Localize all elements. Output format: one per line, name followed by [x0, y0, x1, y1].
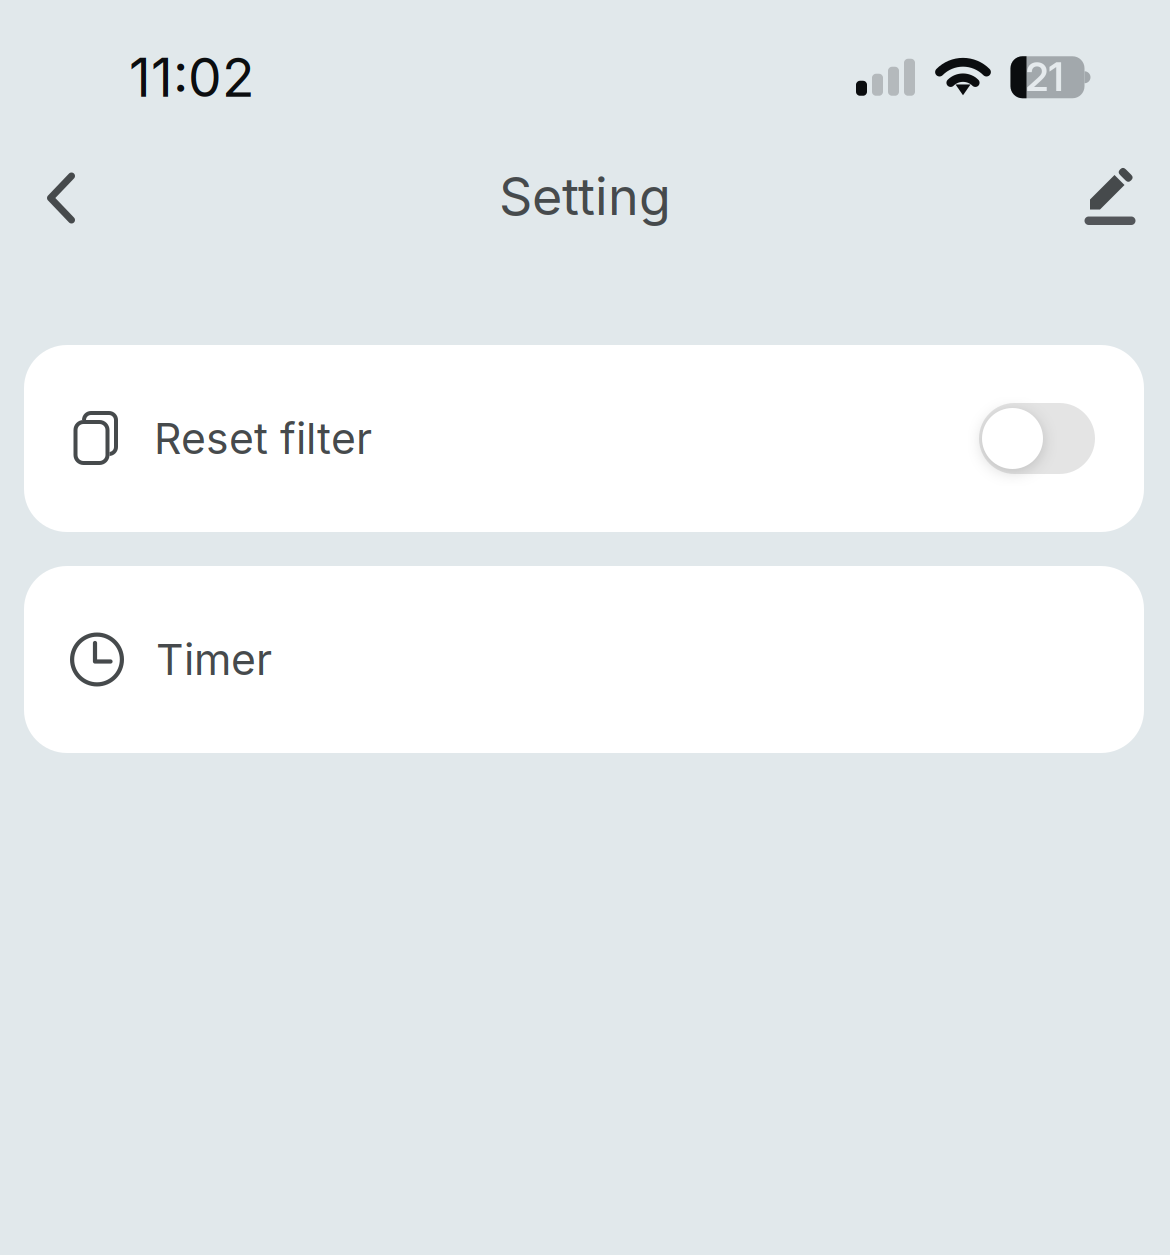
button[interactable]: Timer	[24, 566, 1144, 753]
staticText: Reset filter	[154, 413, 372, 464]
button[interactable]: Edit	[1072, 150, 1148, 242]
staticText: Setting	[499, 164, 671, 227]
staticText: 21	[1025, 54, 1063, 101]
staticText: Timer	[156, 634, 272, 685]
button[interactable]: Reset filter	[24, 345, 1144, 532]
staticText: 11:02	[129, 45, 255, 109]
button[interactable]: Back	[23, 150, 99, 242]
